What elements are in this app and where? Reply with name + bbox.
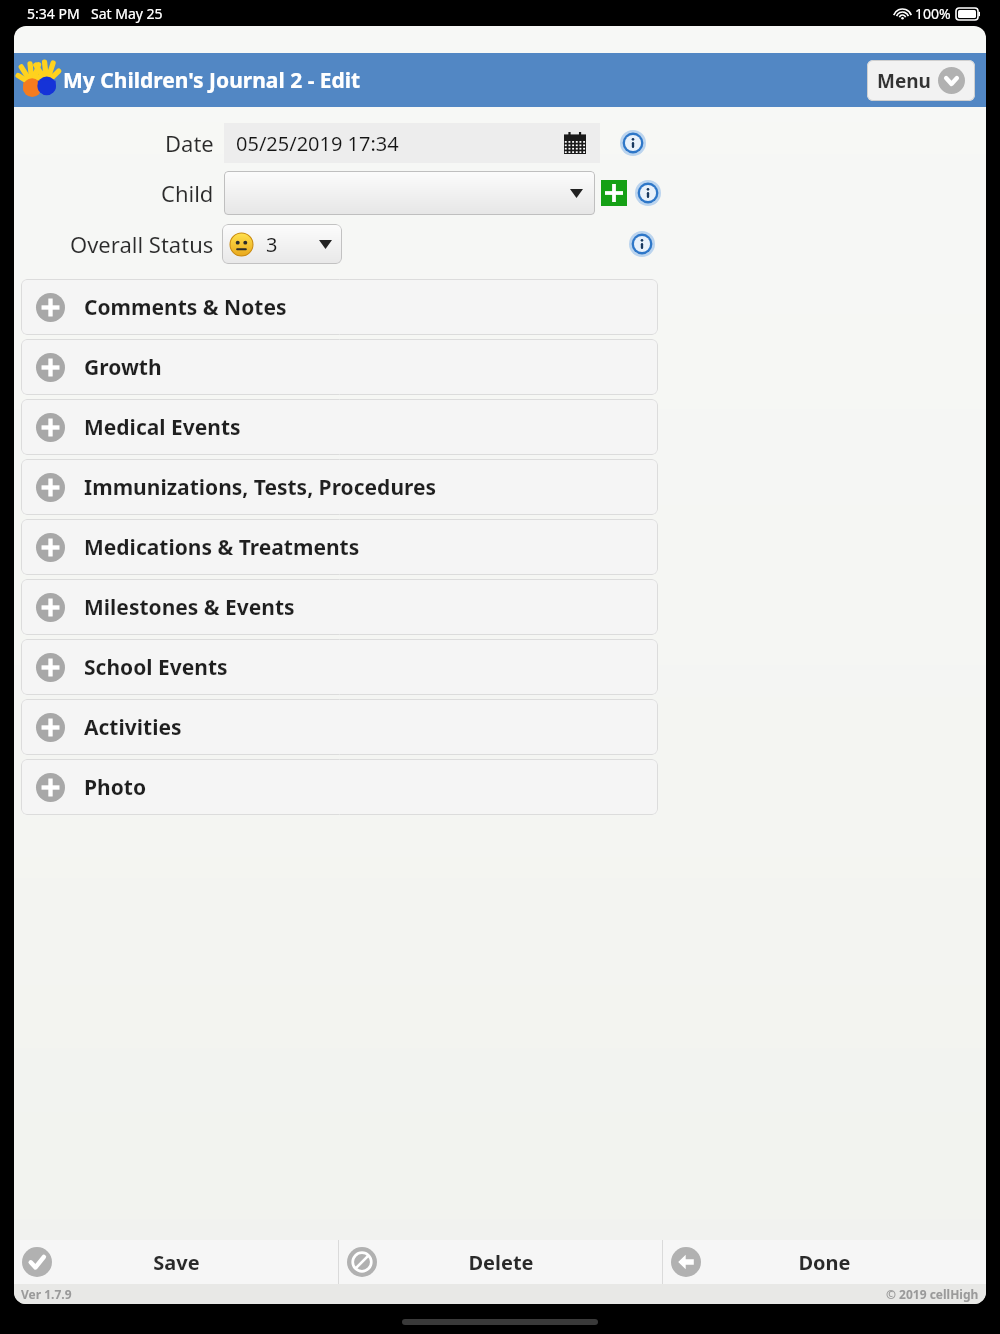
- staticText: 3: [266, 231, 278, 258]
- button[interactable]: Photo: [21, 759, 658, 815]
- staticText: Milestones & Events: [84, 593, 295, 622]
- staticText: Comments & Notes: [84, 293, 287, 322]
- staticText: Save: [153, 1249, 200, 1276]
- button[interactable]: Information: [635, 180, 661, 206]
- staticText: Child: [161, 178, 214, 208]
- staticText: Medications & Treatments: [84, 533, 360, 562]
- button[interactable]: Delete: [339, 1240, 662, 1284]
- staticText: My Children's Journal 2 - Edit: [63, 66, 361, 95]
- button[interactable]: Activities: [21, 699, 658, 755]
- button[interactable]: Comments & Notes: [21, 279, 658, 335]
- staticText: School Events: [84, 653, 228, 682]
- staticText: Delete: [468, 1249, 534, 1276]
- staticText: Overall Status: [70, 229, 214, 259]
- button[interactable]: [224, 171, 595, 215]
- staticText: 100%: [915, 4, 951, 23]
- staticText: Photo: [84, 773, 147, 802]
- staticText: Sat May 25: [91, 4, 163, 23]
- button[interactable]: Milestones & Events: [21, 579, 658, 635]
- staticText: © 2019 cellHigh: [886, 1286, 979, 1302]
- button[interactable]: Save: [14, 1240, 338, 1284]
- button[interactable]: Add child: [601, 180, 627, 206]
- staticText: Medical Events: [84, 413, 241, 442]
- staticText: Date: [165, 128, 214, 158]
- staticText: 05/25/2019 17:34: [236, 130, 399, 157]
- button[interactable]: Medical Events: [21, 399, 658, 455]
- staticText: Immunizations, Tests, Procedures: [84, 473, 437, 502]
- button[interactable]: Menu: [867, 60, 975, 101]
- staticText: Done: [798, 1249, 851, 1276]
- button[interactable]: Medications & Treatments: [21, 519, 658, 575]
- button[interactable]: Growth: [21, 339, 658, 395]
- button[interactable]: Information: [620, 130, 646, 156]
- staticText: Activities: [84, 713, 182, 742]
- button[interactable]: Immunizations, Tests, Procedures: [21, 459, 658, 515]
- button[interactable]: 05/25/2019 17:34: [224, 123, 600, 163]
- staticText: Menu: [877, 68, 931, 94]
- button[interactable]: School Events: [21, 639, 658, 695]
- button[interactable]: Done: [663, 1240, 986, 1284]
- button[interactable]: 3: [222, 224, 342, 264]
- staticText: Growth: [84, 353, 162, 382]
- staticText: 5:34 PM: [27, 4, 80, 23]
- button[interactable]: Information: [629, 231, 655, 257]
- staticText: Ver 1.7.9: [21, 1286, 72, 1302]
